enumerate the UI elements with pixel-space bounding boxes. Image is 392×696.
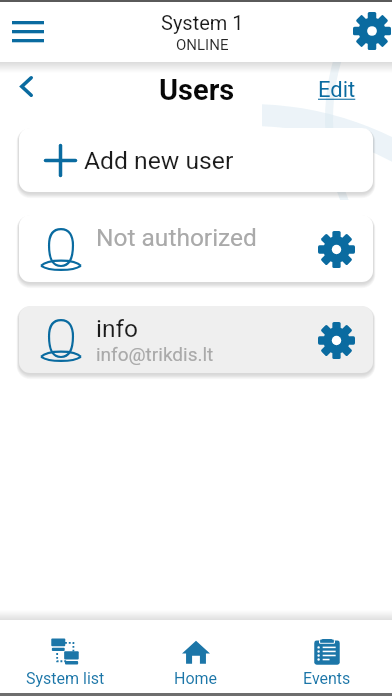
staticText: Not authorized [96, 223, 257, 252]
button[interactable]: Not authorized [19, 215, 373, 282]
button[interactable]: System list [0, 620, 130, 696]
button[interactable]: Settings [348, 7, 392, 55]
staticText: ONLINE [176, 36, 229, 54]
button[interactable]: Home [130, 620, 261, 696]
button[interactable]: User settings [310, 314, 362, 366]
staticText: System 1 [161, 11, 244, 34]
button[interactable]: Edit [318, 77, 356, 103]
button[interactable]: info [19, 306, 373, 373]
staticText: System list [26, 669, 105, 688]
staticText: Add new user [84, 146, 234, 175]
button[interactable]: Events [261, 620, 392, 696]
button[interactable]: Add new user [19, 128, 373, 192]
staticText: info [96, 314, 138, 343]
button[interactable]: User settings [310, 223, 362, 275]
button[interactable]: Menu [4, 7, 52, 55]
staticText: Users [159, 73, 235, 107]
button[interactable]: Back [3, 63, 49, 109]
staticText: Home [174, 669, 218, 688]
staticText: Edit [318, 77, 356, 103]
staticText: Events [303, 669, 351, 688]
staticText: info@trikdis.lt [96, 343, 214, 365]
